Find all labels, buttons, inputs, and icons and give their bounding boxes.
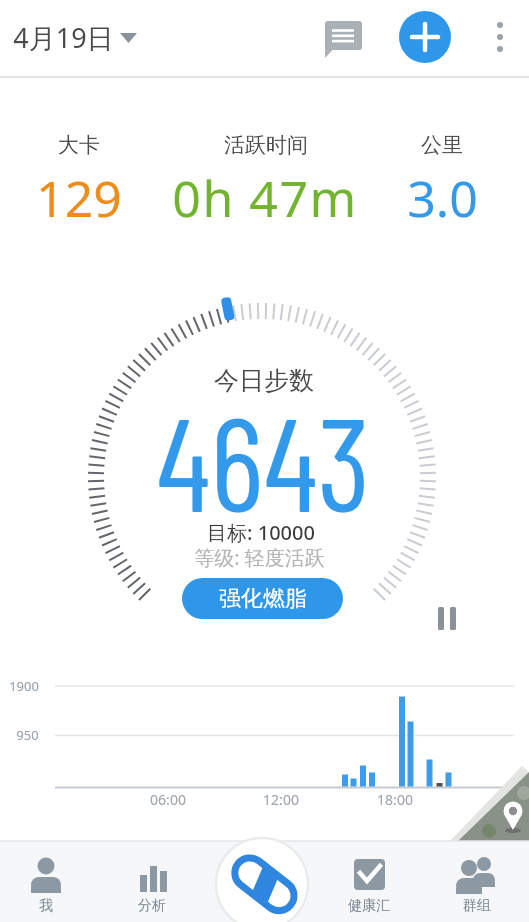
- staticText: 4月19日: [13, 19, 114, 56]
- staticText: 06:00: [150, 790, 186, 809]
- button[interactable]: [215, 837, 309, 922]
- staticText: 我: [39, 897, 53, 915]
- staticText: 健康汇: [348, 897, 390, 915]
- button[interactable]: [430, 600, 464, 636]
- button[interactable]: [484, 11, 519, 63]
- staticText: 4643: [156, 382, 371, 538]
- staticText: 等级: 轻度活跃: [194, 544, 325, 571]
- staticText: 0h 47m: [172, 164, 358, 232]
- button[interactable]: [399, 11, 451, 63]
- button[interactable]: [6, 845, 86, 920]
- staticText: 3.0: [407, 164, 478, 232]
- button[interactable]: [10, 10, 145, 65]
- staticText: 目标: 10000: [207, 519, 315, 546]
- button[interactable]: [329, 845, 409, 920]
- button[interactable]: [437, 845, 517, 920]
- button[interactable]: 强化燃脂: [182, 578, 343, 619]
- staticText: 今日步数: [214, 365, 314, 396]
- staticText: 129: [36, 164, 122, 232]
- button[interactable]: [318, 14, 370, 66]
- staticText: 950: [16, 726, 39, 744]
- staticText: 强化燃脂: [219, 585, 307, 613]
- button[interactable]: [112, 845, 192, 920]
- staticText: 群组: [463, 897, 491, 915]
- staticText: 12:00: [263, 790, 299, 809]
- staticText: 1900: [9, 677, 39, 695]
- staticText: 分析: [138, 897, 166, 915]
- staticText: 大卡: [58, 132, 100, 158]
- staticText: 活跃时间: [224, 132, 308, 158]
- staticText: 18:00: [377, 790, 413, 809]
- staticText: 公里: [421, 132, 463, 158]
